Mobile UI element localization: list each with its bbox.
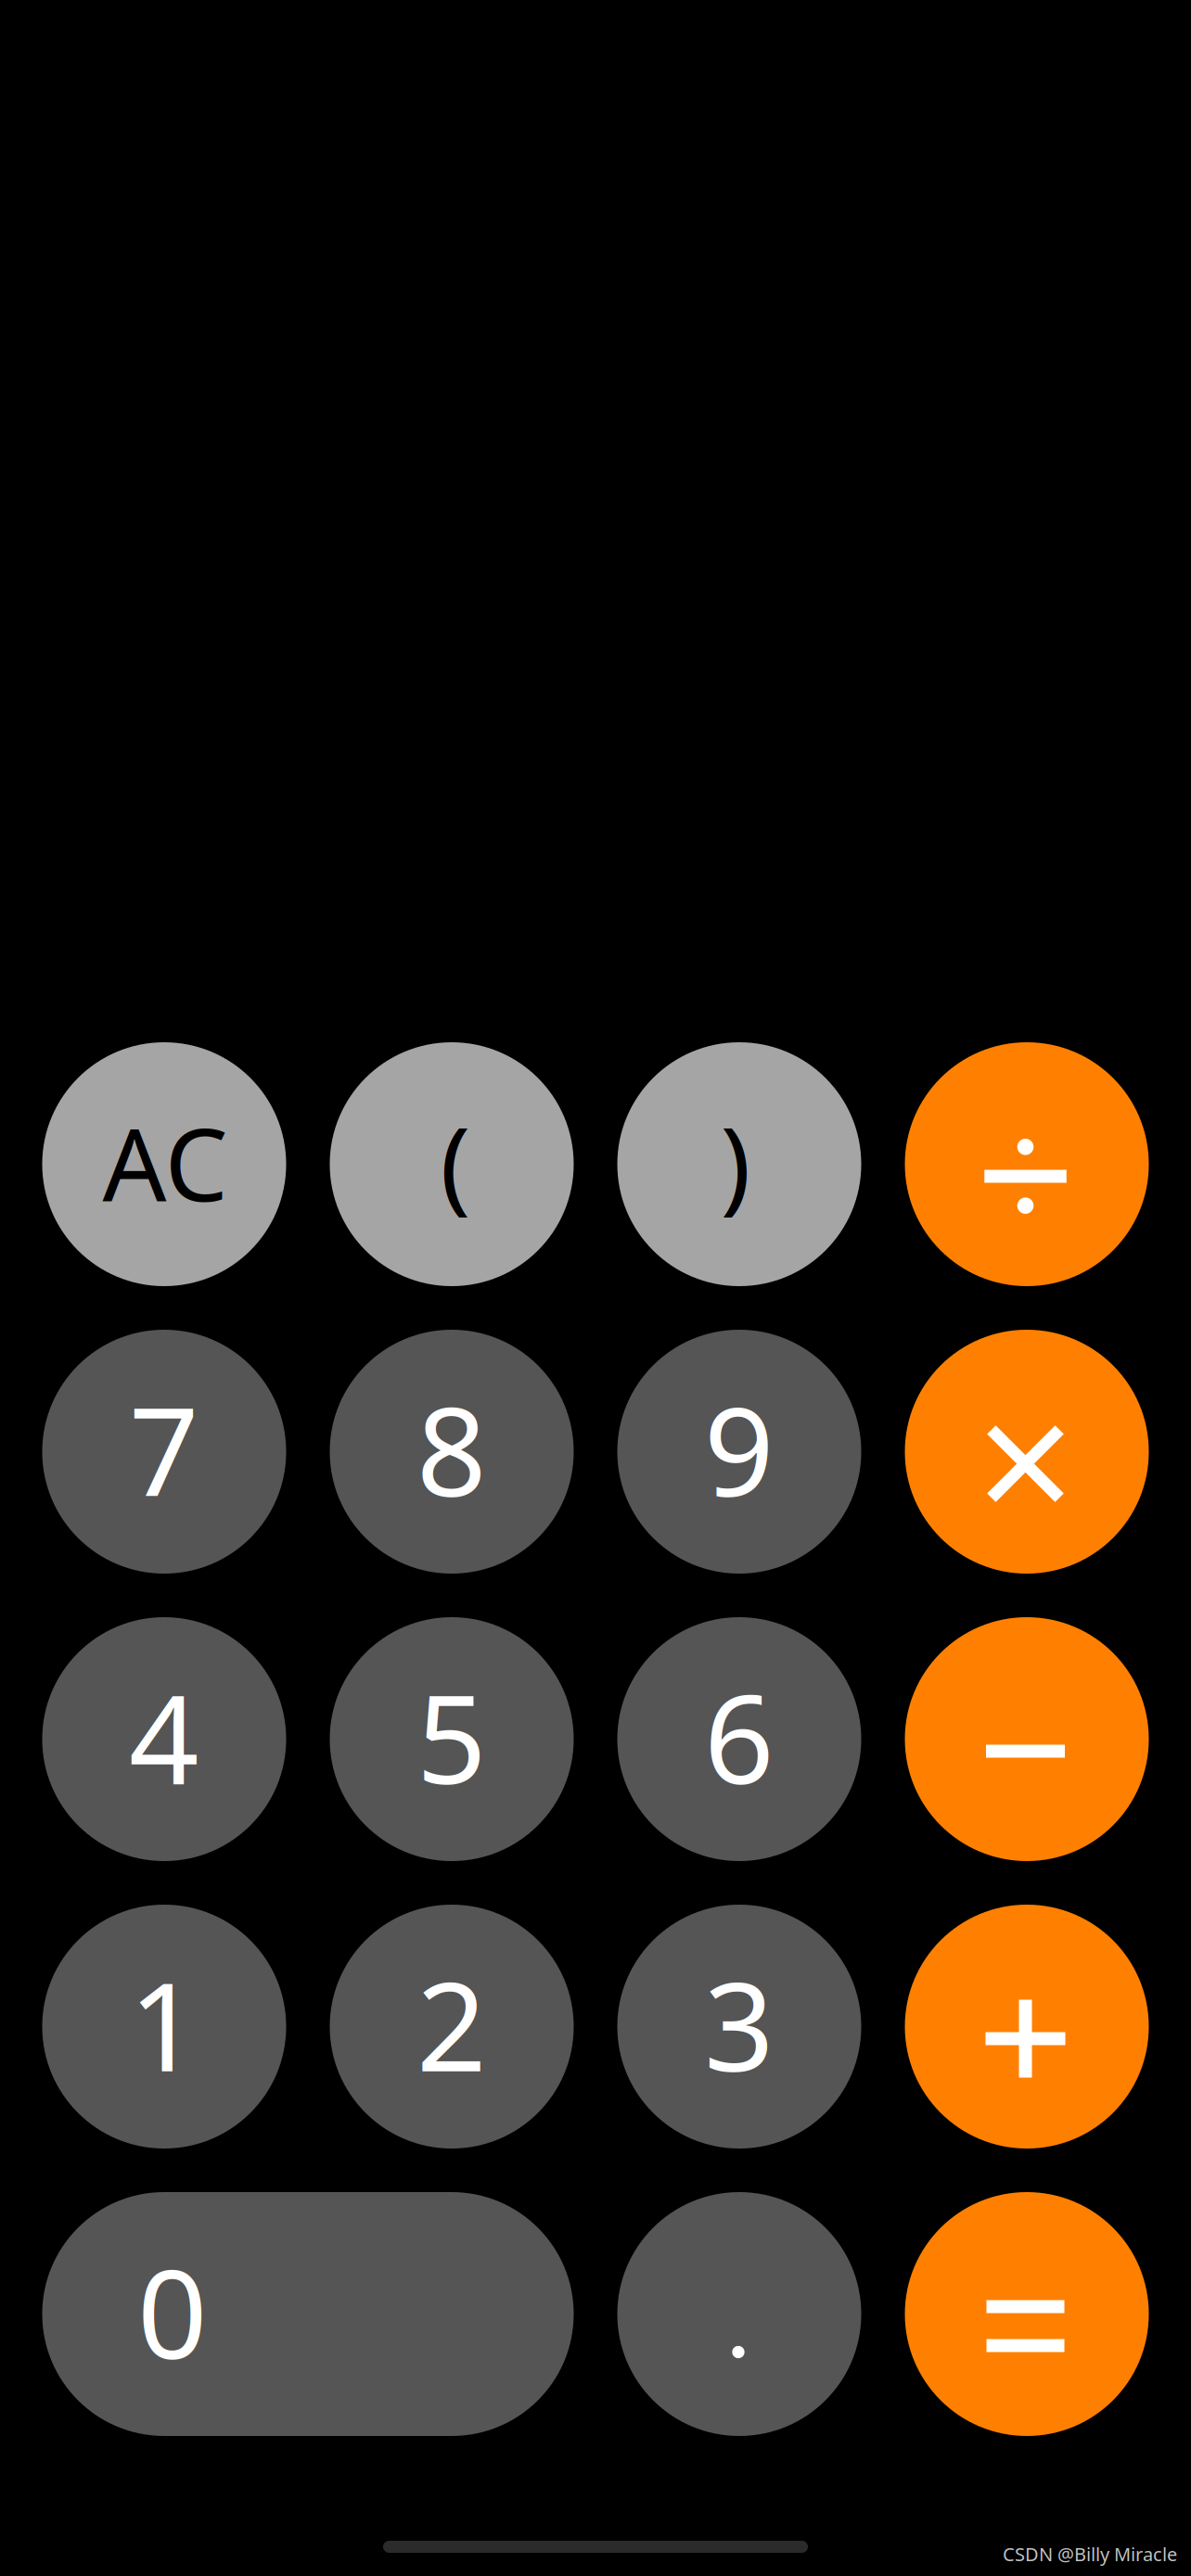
staticText: ) (720, 1095, 751, 1230)
button[interactable]: AC (42, 1042, 286, 1286)
button[interactable]: 0 (42, 2192, 574, 2436)
button[interactable]: 4 (42, 1617, 286, 1861)
button[interactable]: Divide (905, 1042, 1149, 1286)
button[interactable]: 8 (330, 1330, 574, 1574)
staticText: 4 (129, 1655, 199, 1818)
staticText: 8 (416, 1368, 487, 1530)
button[interactable]: 6 (617, 1617, 861, 1861)
button[interactable]: 3 (617, 1905, 861, 2149)
staticText: 0 (137, 2230, 208, 2393)
button[interactable]: Multiply (905, 1330, 1149, 1574)
staticText: CSDN @Billy Miracle (1003, 2542, 1177, 2566)
button[interactable]: 1 (42, 1905, 286, 2149)
button[interactable]: 2 (330, 1905, 574, 2149)
button[interactable]: 7 (42, 1330, 286, 1574)
staticText: AC (102, 1096, 228, 1229)
staticText: ( (440, 1095, 471, 1230)
button[interactable]: Decimal point (617, 2192, 861, 2436)
button[interactable]: ( (330, 1042, 574, 1286)
staticText: 2 (416, 1943, 487, 2105)
button[interactable]: Add (905, 1905, 1149, 2149)
button[interactable]: 9 (617, 1330, 861, 1574)
button[interactable]: Equals (905, 2192, 1149, 2436)
staticText: 1 (129, 1943, 199, 2105)
staticText: 5 (416, 1655, 487, 1818)
button[interactable]: Subtract (905, 1617, 1149, 1861)
button[interactable]: ) (617, 1042, 861, 1286)
staticText: 3 (704, 1943, 775, 2105)
staticText: 6 (704, 1655, 775, 1818)
staticText: 7 (129, 1368, 199, 1530)
button[interactable]: 5 (330, 1617, 574, 1861)
staticText: 9 (704, 1368, 775, 1530)
